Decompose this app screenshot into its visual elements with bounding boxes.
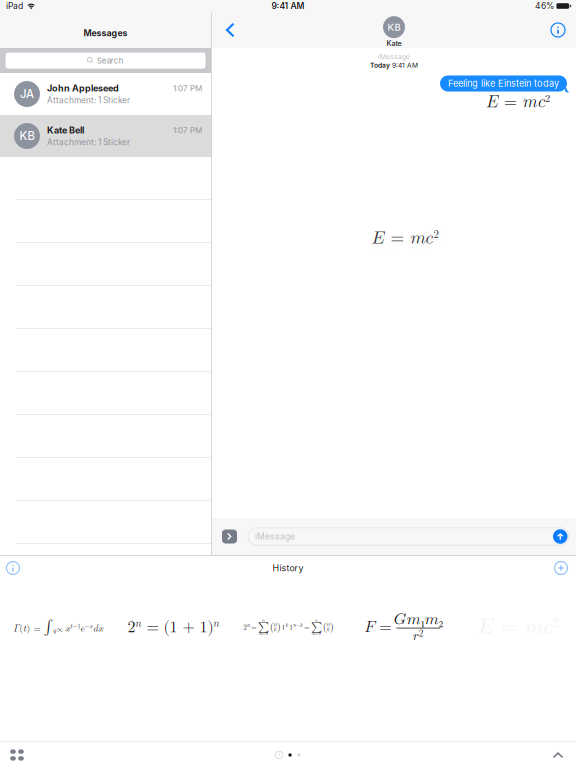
- staticText: =: [304, 623, 310, 631]
- staticText: iPad: [6, 1, 23, 11]
- staticText: 2𝑛: [243, 623, 250, 631]
- staticText: ∑: [258, 622, 269, 632]
- staticText: 𝐸 = 𝑚𝑐2: [477, 617, 559, 637]
- staticText: 𝑘: [327, 627, 330, 632]
- staticText: 𝑛: [327, 622, 330, 627]
- staticText: 𝑛: [315, 618, 318, 623]
- staticText: 𝑛: [274, 622, 277, 627]
- button[interactable]: Equation sticker: [231, 598, 346, 656]
- staticText: 𝐹 =: [364, 619, 391, 635]
- button[interactable]: Create sticker: [549, 556, 573, 580]
- staticText: Today 9:41 AM: [370, 61, 418, 69]
- button[interactable]: KB: [0, 115, 211, 157]
- staticText: 1:07 PM: [173, 83, 202, 93]
- staticText: (: [270, 622, 274, 632]
- staticText: ∑: [311, 622, 322, 632]
- staticText: Feeling like Einstein today: [448, 78, 559, 89]
- staticText: Kate Bell: [47, 125, 84, 136]
- button[interactable]: Show app drawer: [222, 529, 237, 543]
- button[interactable]: App drawer: [3, 742, 31, 768]
- staticText: Messages: [83, 28, 127, 38]
- staticText: 𝐸 = 𝑚𝑐2: [371, 229, 438, 247]
- staticText: 𝑘=0: [312, 631, 320, 636]
- button[interactable]: JA: [0, 73, 211, 115]
- staticText: (: [323, 622, 327, 632]
- staticText: KB: [19, 129, 34, 143]
- button[interactable]: Equation sticker: [346, 598, 461, 656]
- staticText: ): [330, 622, 334, 632]
- staticText: Kate: [386, 39, 401, 48]
- button[interactable]: Back: [218, 12, 242, 48]
- staticText: 𝐸 = 𝑚𝑐2: [486, 94, 550, 110]
- staticText: iMessage: [378, 53, 410, 61]
- staticText: KB: [387, 21, 400, 33]
- staticText: 1𝑘: [281, 623, 288, 631]
- staticText: JA: [20, 87, 34, 101]
- staticText: 1𝑛−𝑘: [289, 623, 303, 631]
- staticText: 1:07 PM: [173, 125, 202, 135]
- button[interactable]: Details: [543, 12, 573, 48]
- staticText: John Appleseed: [47, 83, 119, 94]
- staticText: 𝑛: [262, 618, 265, 623]
- staticText: 𝛤(𝑡) = ∫₀∞ 𝑥𝑡−1𝑒−𝑥𝑑𝑥: [13, 620, 103, 634]
- staticText: Attachment: 1 Sticker: [47, 95, 130, 105]
- staticText: Attachment: 1 Sticker: [47, 137, 130, 147]
- staticText: ): [277, 622, 281, 632]
- staticText: 𝐺𝑚₁𝑚₂: [394, 611, 443, 627]
- button[interactable]: Send: [553, 529, 567, 544]
- button[interactable]: About this app: [1, 556, 25, 580]
- staticText: =: [251, 623, 257, 631]
- staticText: 𝑘=0: [259, 631, 267, 636]
- staticText: 2𝑛 = (1 + 1)𝑛: [127, 619, 219, 635]
- button[interactable]: Equation sticker: [116, 598, 231, 656]
- staticText: Search: [97, 56, 124, 65]
- staticText: iMessage: [255, 531, 295, 542]
- staticText: History: [272, 563, 303, 573]
- staticText: 𝑟2: [413, 629, 424, 642]
- button[interactable]: Equation sticker: [1, 598, 116, 656]
- button[interactable]: KB: [383, 14, 405, 46]
- staticText: 𝑘: [274, 627, 277, 632]
- staticText: 9:41 AM: [271, 1, 304, 11]
- staticText: 46%: [535, 1, 554, 11]
- button[interactable]: Expand: [545, 742, 571, 768]
